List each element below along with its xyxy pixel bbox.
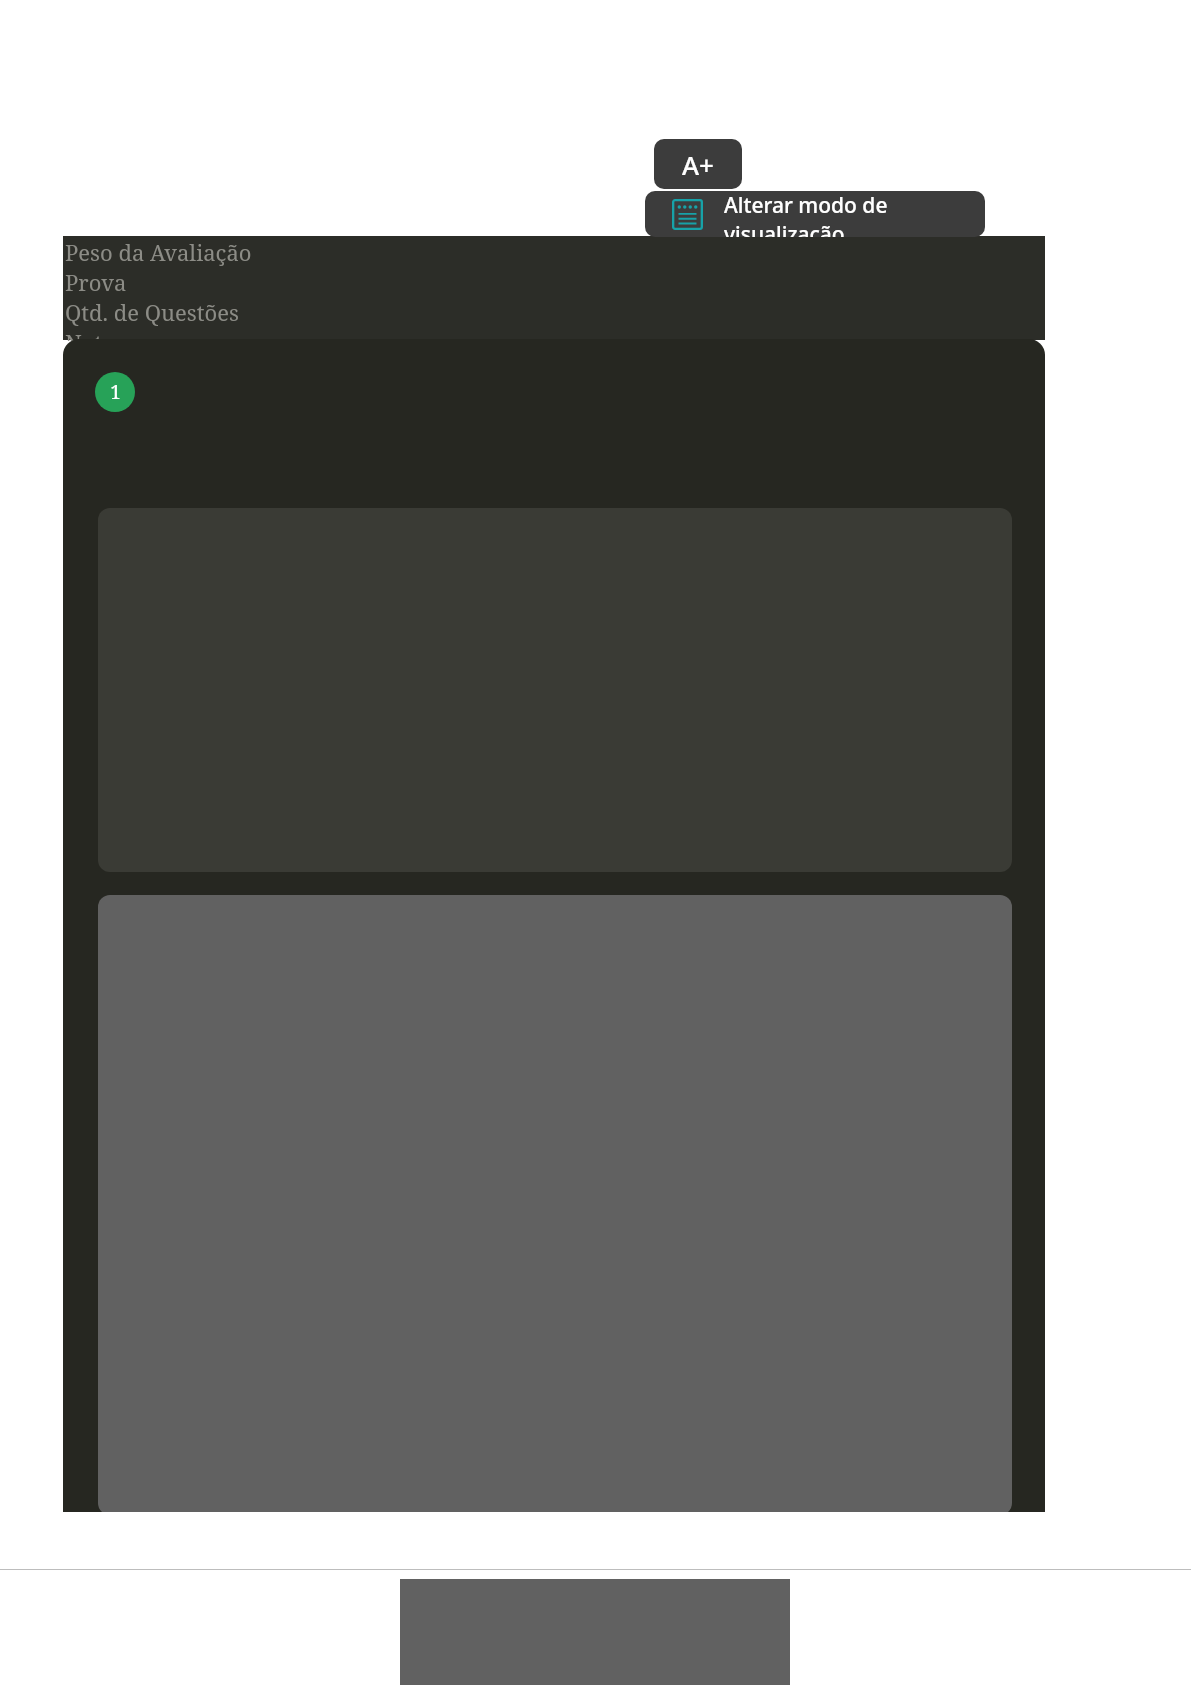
staticText: Peso da Avaliação bbox=[65, 237, 252, 267]
staticText: Nota bbox=[65, 327, 115, 341]
staticText: A+ bbox=[682, 147, 714, 182]
button[interactable]: A+ bbox=[654, 139, 742, 189]
button[interactable]: 1 bbox=[95, 372, 135, 412]
staticText: Prova bbox=[65, 267, 127, 297]
button[interactable]: 1 bbox=[63, 339, 1045, 1512]
staticText: Qtd. de Questões bbox=[65, 297, 239, 327]
staticText: Alterar modo de visualização bbox=[724, 191, 985, 237]
button[interactable]: Alterar modo de visualização bbox=[645, 191, 985, 237]
other: Alterar modo de visualização bbox=[672, 199, 703, 230]
staticText: 1 bbox=[110, 379, 121, 405]
